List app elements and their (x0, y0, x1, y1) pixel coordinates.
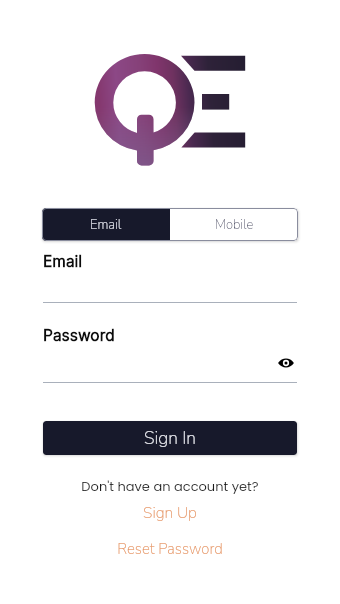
staticText: Sign Up (143, 502, 197, 523)
staticText: Email (90, 216, 122, 234)
staticText: Sign In (144, 426, 196, 450)
button[interactable]: Email (42, 208, 170, 241)
staticText: Password (43, 326, 115, 345)
button[interactable]: Mobile (170, 208, 298, 241)
button[interactable]: Reset Password (117, 539, 223, 559)
button[interactable]: Sign Up (143, 502, 197, 523)
staticText: Reset Password (117, 539, 223, 559)
staticText: Email (43, 252, 83, 271)
staticText: Mobile (215, 216, 254, 234)
button[interactable]: Sign In (43, 421, 297, 455)
button[interactable]: Show password (277, 354, 295, 372)
staticText: Don't have an account yet? (81, 477, 259, 495)
